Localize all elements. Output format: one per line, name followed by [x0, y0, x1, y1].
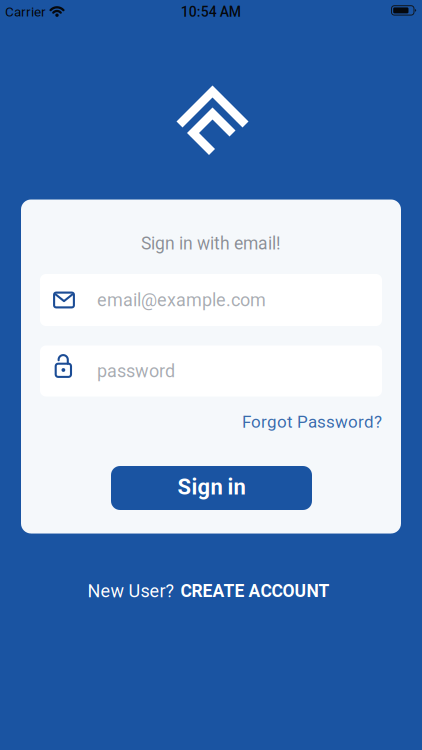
staticText: Sign in: [177, 474, 245, 500]
button[interactable]: Forgot Password?: [242, 412, 382, 432]
staticText: 10:54 AM: [181, 4, 241, 20]
staticText: Carrier: [5, 4, 46, 20]
button[interactable]: email@example.com: [40, 274, 382, 326]
staticText: Forgot Password?: [242, 412, 382, 432]
staticText: Sign in with email!: [141, 233, 281, 254]
button[interactable]: CREATE ACCOUNT: [180, 581, 329, 601]
button[interactable]: Sign in: [111, 466, 312, 510]
staticText: New User?: [87, 580, 174, 602]
staticText: email@example.com: [97, 289, 266, 311]
staticText: CREATE ACCOUNT: [180, 581, 329, 601]
staticText: password: [97, 360, 175, 382]
button[interactable]: password: [40, 345, 382, 396]
